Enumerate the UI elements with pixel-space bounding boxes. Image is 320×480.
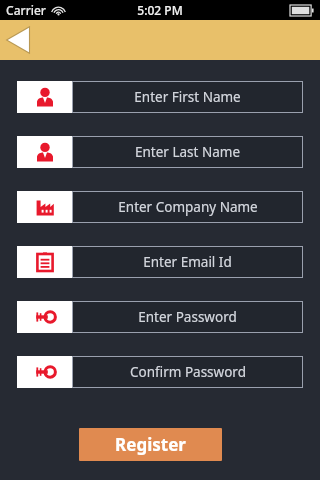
button[interactable]: Enter Email Id (17, 246, 303, 278)
button[interactable]: Enter First Name (17, 81, 303, 113)
button[interactable]: Enter Last Name (17, 136, 303, 168)
staticText: Enter Email Id (143, 253, 232, 271)
button[interactable]: Back (6, 26, 34, 54)
staticText: Enter Password (138, 308, 237, 326)
staticText: Enter Last Name (135, 143, 240, 161)
staticText: Confirm Password (130, 363, 246, 381)
staticText: 5:02 PM (137, 2, 183, 18)
button[interactable]: Enter Company Name (17, 191, 303, 223)
button[interactable]: Enter Password (17, 301, 303, 333)
staticText: Enter Company Name (118, 198, 258, 216)
staticText: Carrier (6, 2, 46, 18)
staticText: Enter First Name (134, 88, 241, 106)
staticText: Register (115, 433, 186, 456)
button[interactable]: Register (79, 428, 222, 461)
button[interactable]: Confirm Password (17, 356, 303, 388)
